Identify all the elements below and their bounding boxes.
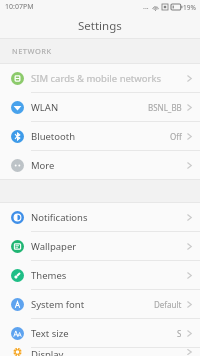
button[interactable]: WLAN <box>0 93 200 121</box>
staticText: Notifications <box>31 211 88 224</box>
staticText: Settings <box>78 18 122 34</box>
staticText: More <box>31 159 55 172</box>
staticText: 10:07PM <box>5 2 34 12</box>
staticText: Wallpaper <box>31 240 77 253</box>
button[interactable]: Display <box>0 348 200 356</box>
button[interactable]: Themes <box>0 261 200 289</box>
button[interactable]: Bluetooth <box>0 122 200 150</box>
staticText: Default <box>154 299 182 310</box>
staticText: NETWORK <box>12 46 52 56</box>
staticText: 19% <box>183 3 196 12</box>
button[interactable]: Notifications <box>0 203 200 231</box>
button[interactable]: Text size <box>0 319 200 347</box>
button[interactable]: Wallpaper <box>0 232 200 260</box>
staticText: BSNL_BB <box>148 102 182 113</box>
button[interactable]: More <box>0 151 200 179</box>
staticText: ... <box>143 2 149 12</box>
staticText: System font <box>31 298 85 311</box>
button[interactable]: System font <box>0 290 200 318</box>
staticText: SIM cards & mobile networks <box>31 72 162 85</box>
staticText: Themes <box>31 269 67 282</box>
staticText: WLAN <box>31 101 59 114</box>
staticText: Display <box>31 348 64 356</box>
staticText: Off <box>170 131 182 142</box>
staticText: Text size <box>31 327 69 340</box>
staticText: Bluetooth <box>31 130 76 143</box>
button[interactable]: SIM cards & mobile networks <box>0 64 200 92</box>
staticText: S <box>177 328 182 339</box>
